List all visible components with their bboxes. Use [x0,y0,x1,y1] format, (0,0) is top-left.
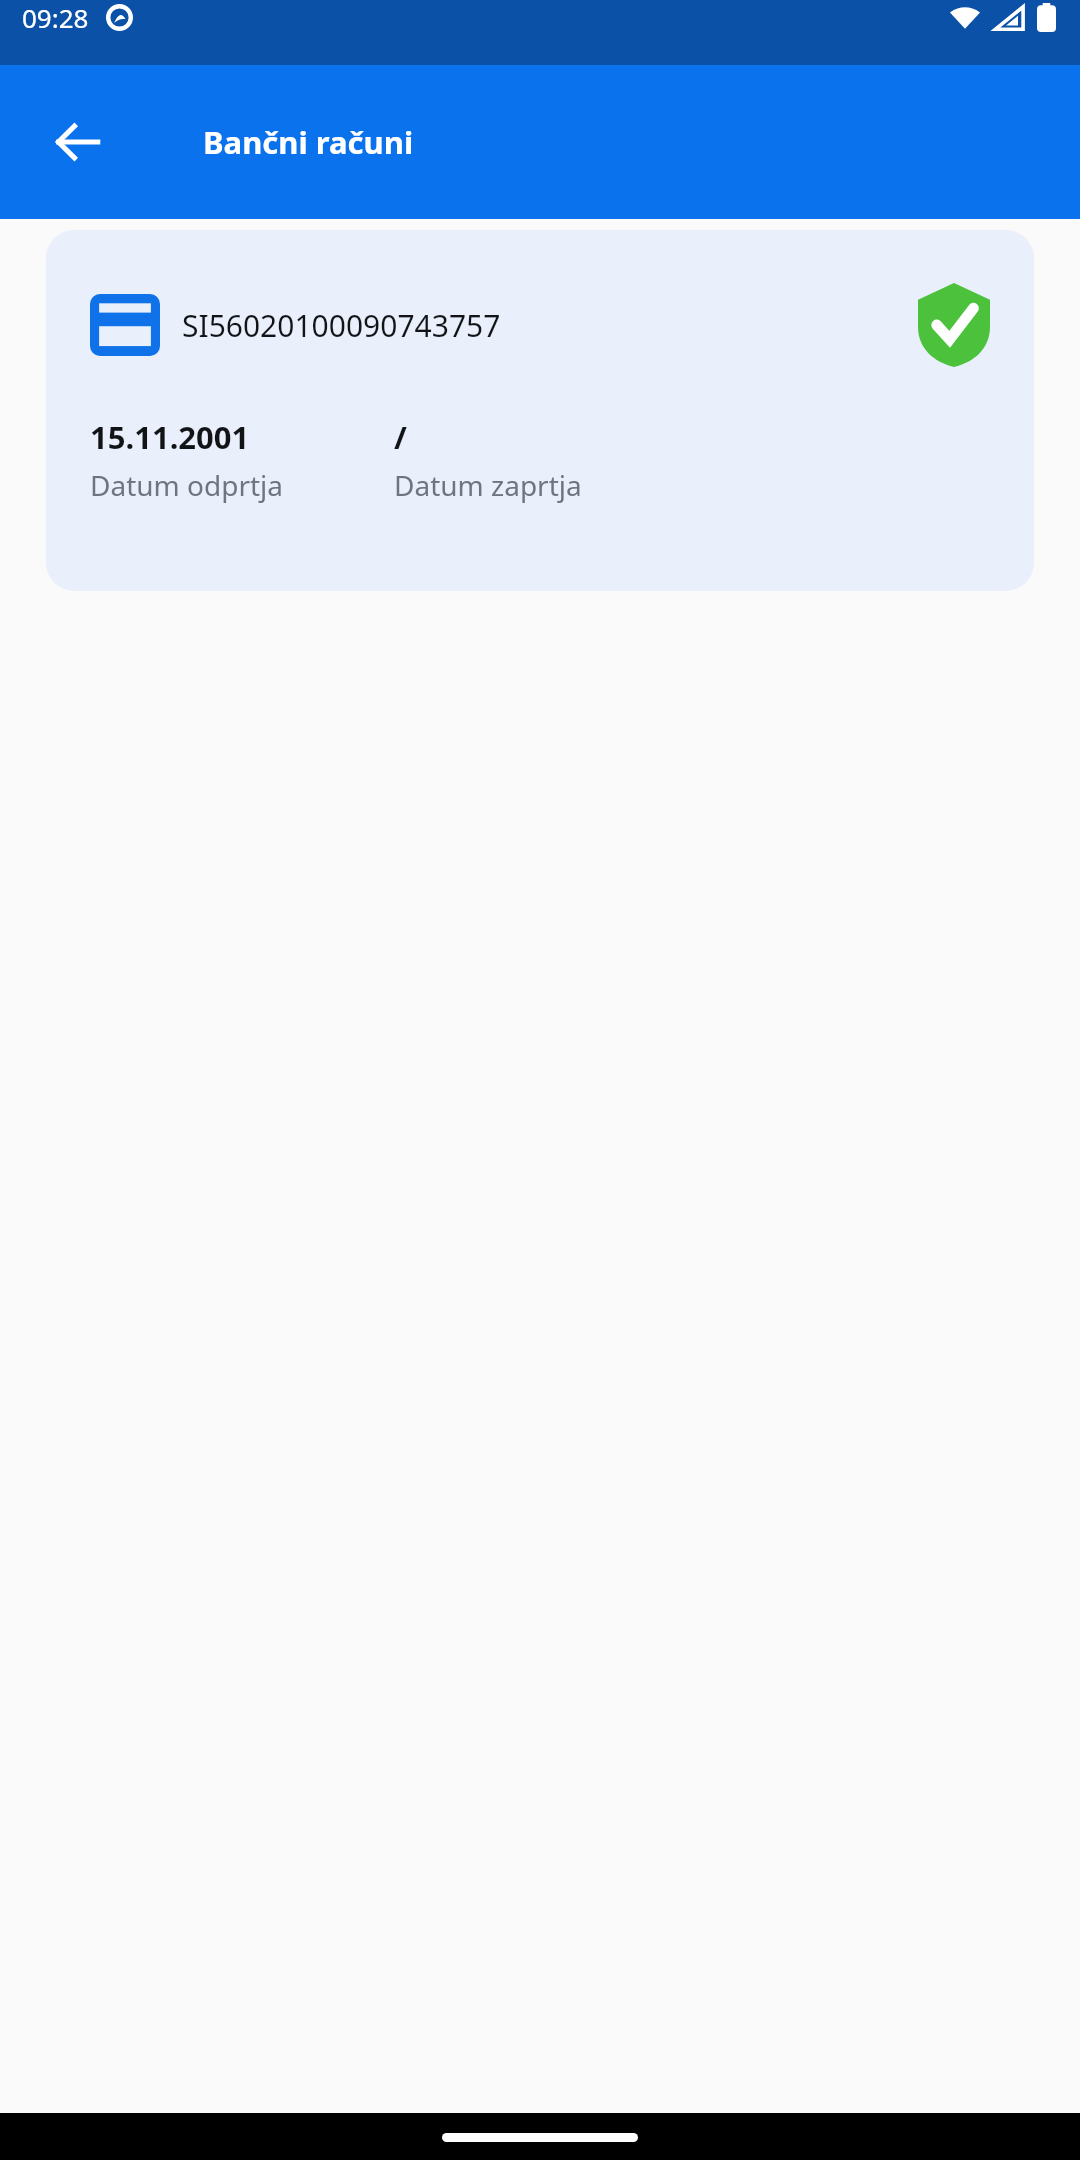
staticText: SI56020100090743757 [182,305,501,346]
staticText: Datum zaprtja [394,466,582,504]
button[interactable]: SI56020100090743757 [46,230,1034,591]
staticText: 09:28 [22,0,89,35]
staticText: Bančni računi [203,121,414,163]
staticText: 15.11.2001 [90,416,250,458]
staticText: Datum odprtja [90,466,284,504]
button[interactable]: Back [44,108,112,176]
staticText: / [394,416,407,458]
